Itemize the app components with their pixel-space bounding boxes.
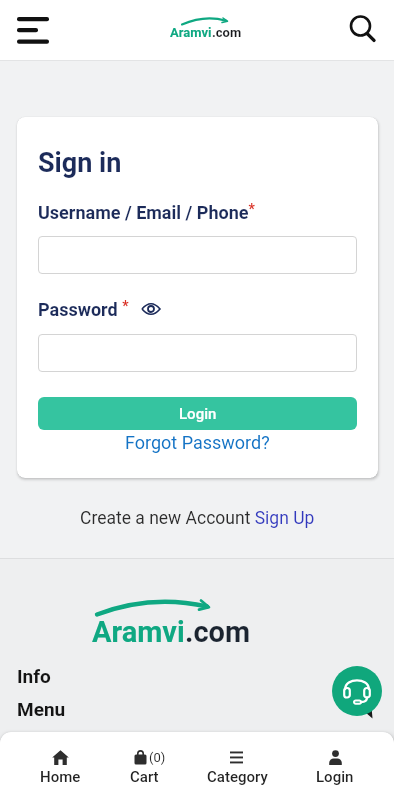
staticText: .com	[212, 25, 242, 40]
staticText: Home	[40, 768, 81, 786]
button[interactable]	[141, 301, 161, 317]
button[interactable]: Category	[199, 732, 275, 800]
button[interactable]	[38, 334, 357, 372]
staticText: Forgot Password?	[125, 432, 270, 453]
button[interactable]: Home	[22, 732, 98, 800]
staticText: Username / Email / Phone*	[38, 201, 255, 223]
button[interactable]	[332, 666, 382, 716]
button[interactable]: Forgot Password?	[38, 432, 357, 453]
button[interactable]	[38, 236, 357, 274]
button[interactable]: Login	[297, 732, 373, 800]
staticText: Login	[316, 768, 354, 786]
button[interactable]: Login	[38, 397, 357, 430]
button[interactable]: Aramvi	[170, 18, 242, 40]
staticText: Login	[179, 405, 217, 423]
staticText: Aramvi	[92, 615, 185, 649]
staticText: Aramvi	[170, 25, 212, 40]
button[interactable]	[12, 10, 56, 52]
button[interactable]: (0)	[106, 732, 182, 800]
button[interactable]: Info	[17, 665, 51, 687]
staticText: .com	[185, 615, 251, 649]
button[interactable]: Create a new Account Sign Up	[0, 508, 394, 529]
staticText: Cart	[130, 768, 159, 786]
staticText: Create a new Account Sign Up	[80, 508, 315, 529]
staticText: Menu	[17, 698, 66, 720]
button[interactable]	[340, 6, 386, 52]
staticText: Sign in	[38, 147, 122, 179]
button[interactable]: Menu	[17, 698, 66, 720]
staticText: Info	[17, 665, 51, 687]
staticText: (0)	[149, 750, 166, 765]
staticText: Password *	[38, 298, 129, 320]
staticText: Category	[207, 768, 268, 786]
